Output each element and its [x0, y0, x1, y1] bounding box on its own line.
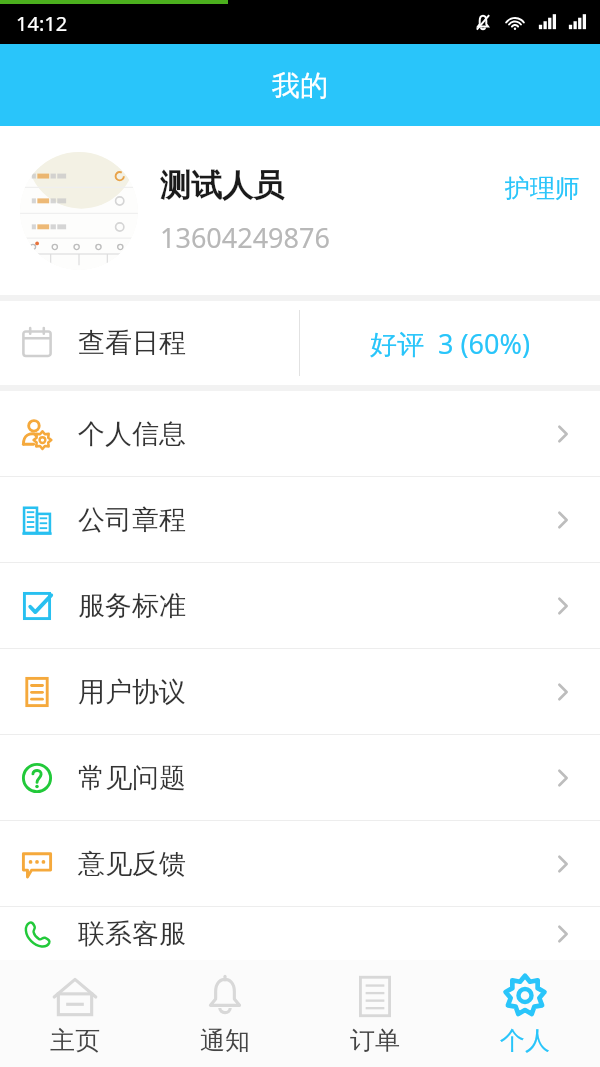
staticText: 好评 3 (60%) — [370, 325, 531, 362]
button[interactable]: 意见反馈 — [0, 821, 600, 906]
staticText: 13604249876 — [160, 219, 330, 256]
staticText: 查看日程 — [78, 326, 186, 360]
button[interactable]: 公司章程 — [0, 477, 600, 562]
staticText: 常见问题 — [78, 761, 550, 795]
button[interactable]: 订单 — [300, 960, 450, 1067]
button[interactable]: 护理师 — [505, 173, 580, 204]
staticText: 14:12 — [16, 10, 68, 37]
staticText: 主页 — [50, 1025, 100, 1056]
button[interactable]: Avatar — [20, 152, 138, 270]
button[interactable]: 好评 3 (60%) — [300, 301, 600, 385]
staticText: 测试人员 — [160, 166, 284, 205]
button[interactable]: 个人 — [450, 960, 600, 1067]
button[interactable]: 联系客服 — [0, 907, 600, 960]
staticText: 公司章程 — [78, 503, 550, 537]
button[interactable]: 个人信息 — [0, 391, 600, 476]
staticText: 服务标准 — [78, 589, 550, 623]
staticText: 联系客服 — [78, 917, 550, 951]
button[interactable]: 用户协议 — [0, 649, 600, 734]
button[interactable]: 常见问题 — [0, 735, 600, 820]
staticText: 意见反馈 — [78, 847, 550, 881]
button[interactable]: 主页 — [0, 960, 150, 1067]
button[interactable]: 通知 — [150, 960, 300, 1067]
button[interactable]: 服务标准 — [0, 563, 600, 648]
staticText: 我的 — [272, 68, 328, 103]
staticText: 用户协议 — [78, 675, 550, 709]
staticText: 订单 — [350, 1025, 400, 1056]
staticText: 个人信息 — [78, 417, 550, 451]
staticText: 个人 — [500, 1025, 550, 1056]
staticText: 通知 — [200, 1025, 250, 1056]
button[interactable]: 查看日程 — [0, 301, 299, 385]
